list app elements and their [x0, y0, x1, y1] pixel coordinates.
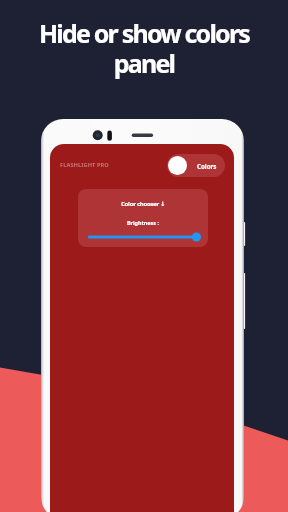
staticText: Hide or show colors panel: [14, 16, 274, 81]
staticText: Brightness :: [127, 219, 159, 226]
staticText: Colors: [197, 162, 217, 170]
button[interactable]: Color chooser ↓: [78, 189, 208, 247]
staticText: FLASHLIGHT PRO: [60, 161, 109, 169]
button[interactable]: Colors: [167, 154, 225, 177]
staticText: Color chooser ↓: [121, 200, 165, 208]
